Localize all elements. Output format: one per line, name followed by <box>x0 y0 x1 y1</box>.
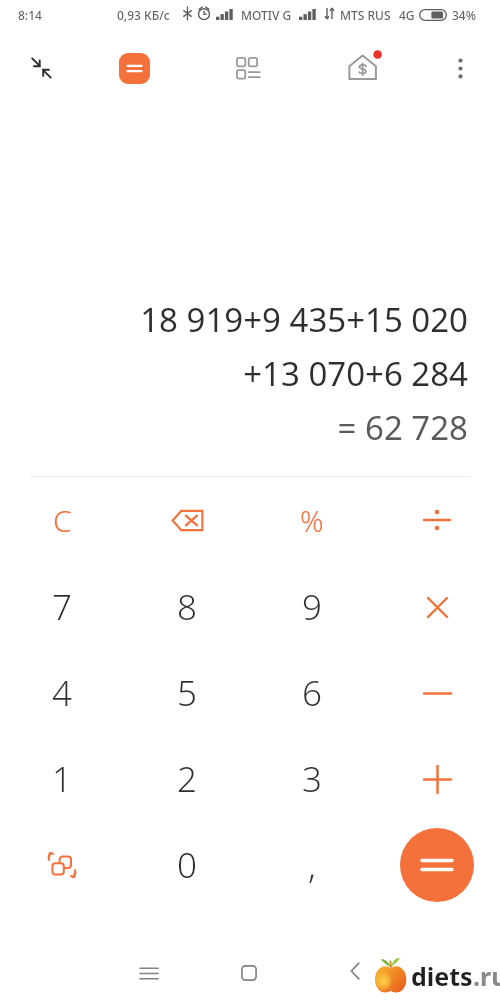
staticText: 5 <box>177 669 197 717</box>
button[interactable]: Equals <box>400 828 474 902</box>
button[interactable]: 8 <box>128 566 246 648</box>
button[interactable]: , <box>253 824 371 906</box>
button[interactable]: % <box>253 479 371 561</box>
staticText: 3 <box>302 755 322 803</box>
staticText: 6 <box>302 669 322 717</box>
staticText: 4G <box>399 7 415 23</box>
button[interactable]: Multiply <box>378 566 496 648</box>
button[interactable]: 0 <box>128 824 246 906</box>
staticText: 0,93 КБ/c <box>117 7 170 23</box>
staticText: MTS RUS <box>340 7 391 23</box>
staticText: 1 <box>52 755 72 803</box>
button[interactable]: Minus <box>378 652 496 734</box>
staticText: 34% <box>452 7 476 23</box>
button[interactable]: Calculator <box>111 45 157 91</box>
staticText: = 62 728 <box>337 405 468 450</box>
staticText: 8 <box>177 583 197 631</box>
button[interactable]: Convert units <box>3 824 121 906</box>
button[interactable]: 9 <box>253 566 371 648</box>
staticText: diets <box>411 959 473 993</box>
staticText: MOTIV G <box>241 7 292 23</box>
button[interactable]: Back <box>333 949 377 993</box>
button[interactable]: 2 <box>128 738 246 820</box>
button[interactable]: Unit converter <box>224 45 272 93</box>
button[interactable]: Recents <box>125 949 173 997</box>
button[interactable]: Plus <box>378 738 496 820</box>
staticText: +13 070+6 284 <box>243 351 468 396</box>
button[interactable]: 4 <box>3 652 121 734</box>
button[interactable]: Mortgage <box>339 42 389 92</box>
staticText: 0 <box>177 841 197 889</box>
staticText: 4 <box>52 669 72 717</box>
staticText: 2 <box>177 755 197 803</box>
other: Multiply <box>427 597 448 618</box>
staticText: 9 <box>302 583 322 631</box>
button[interactable]: More options <box>437 45 483 91</box>
button[interactable]: C <box>3 479 121 561</box>
other: Backspace <box>171 509 204 532</box>
staticText: % <box>300 501 324 540</box>
other: Divide <box>424 507 450 533</box>
other: Convert units <box>47 850 77 880</box>
other: Minus <box>424 691 451 696</box>
staticText: .ru <box>473 959 500 993</box>
staticText: 18 919+9 435+15 020 <box>140 297 468 342</box>
button[interactable]: 1 <box>3 738 121 820</box>
staticText: , <box>308 841 316 889</box>
button[interactable]: 5 <box>128 652 246 734</box>
button[interactable]: 3 <box>253 738 371 820</box>
other: Plus <box>424 766 451 793</box>
button[interactable]: Home <box>225 949 273 997</box>
button[interactable]: 6 <box>253 652 371 734</box>
button[interactable]: Collapse <box>17 44 65 92</box>
staticText: C <box>53 500 72 541</box>
button[interactable]: Backspace <box>128 479 246 561</box>
button[interactable]: 7 <box>3 566 121 648</box>
staticText: 8:14 <box>18 7 42 23</box>
button[interactable]: Divide <box>378 479 496 561</box>
staticText: 7 <box>52 583 72 631</box>
